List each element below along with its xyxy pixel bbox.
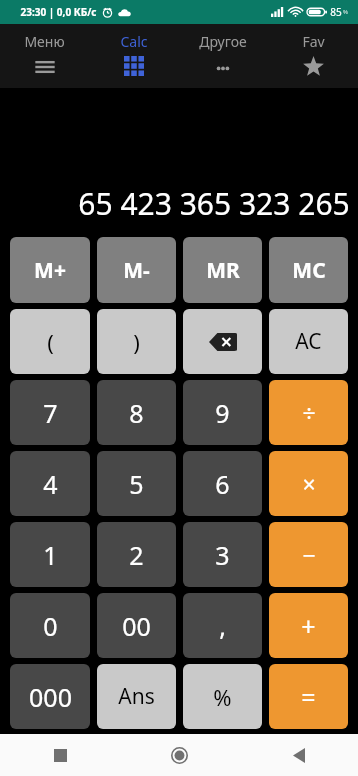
button[interactable]: Back xyxy=(239,734,358,776)
button[interactable]: Ans xyxy=(97,664,176,729)
button[interactable]: ÷ xyxy=(269,380,348,445)
button[interactable]: 9 xyxy=(183,380,262,445)
staticText: 00 xyxy=(122,609,151,643)
staticText: 23:30 | 0,0 КБ/с xyxy=(20,5,97,19)
staticText: , xyxy=(219,609,226,643)
staticText: ) xyxy=(133,327,140,357)
staticText: 1 xyxy=(43,538,58,572)
staticText: 9 xyxy=(215,396,230,430)
button[interactable]: Recents xyxy=(0,734,120,776)
button[interactable]: 8 xyxy=(97,380,176,445)
staticText: ÷ xyxy=(302,397,316,428)
staticText: Calc xyxy=(120,32,148,51)
staticText: Другое xyxy=(199,32,247,51)
button[interactable]: 4 xyxy=(10,451,90,516)
button[interactable]: MR xyxy=(183,237,262,303)
button[interactable]: MC xyxy=(269,237,348,303)
staticText: M- xyxy=(123,256,150,285)
button[interactable]: Меню xyxy=(0,24,89,88)
button[interactable]: % xyxy=(183,664,262,729)
staticText: = xyxy=(301,680,316,714)
button[interactable]: 5 xyxy=(97,451,176,516)
staticText: 6 xyxy=(215,467,230,501)
staticText: % xyxy=(213,682,232,712)
staticText: 65 423 365 323 265 xyxy=(78,183,350,224)
staticText: 0 xyxy=(43,609,58,643)
staticText: 000 xyxy=(29,680,72,714)
button[interactable]: M- xyxy=(97,237,176,303)
button[interactable]: Backspace xyxy=(183,309,262,374)
staticText: M+ xyxy=(34,256,66,285)
staticText: 2 xyxy=(129,538,144,572)
staticText: AC xyxy=(295,327,322,356)
button[interactable]: 6 xyxy=(183,451,262,516)
staticText: + xyxy=(301,609,316,643)
staticText: × xyxy=(302,468,316,499)
button[interactable]: ) xyxy=(97,309,176,374)
staticText: % xyxy=(343,8,348,16)
button[interactable]: + xyxy=(269,593,348,658)
staticText: ( xyxy=(47,327,54,357)
button[interactable]: M+ xyxy=(10,237,90,303)
button[interactable]: 2 xyxy=(97,522,176,587)
button[interactable]: ( xyxy=(10,309,90,374)
button[interactable]: 000 xyxy=(10,664,90,729)
staticText: − xyxy=(302,539,316,570)
staticText: Меню xyxy=(24,32,65,51)
staticText: MC xyxy=(292,256,326,285)
button[interactable]: × xyxy=(269,451,348,516)
button[interactable]: 0 xyxy=(10,593,90,658)
button[interactable]: Другое xyxy=(178,24,268,88)
staticText: Fav xyxy=(302,32,325,51)
button[interactable]: 3 xyxy=(183,522,262,587)
staticText: 85 xyxy=(330,5,342,19)
button[interactable]: 65 423 365 323 265 xyxy=(0,88,358,232)
button[interactable]: Calc xyxy=(89,24,178,88)
staticText: 3 xyxy=(215,538,230,572)
button[interactable]: = xyxy=(269,664,348,729)
button[interactable]: 00 xyxy=(97,593,176,658)
button[interactable]: AC xyxy=(269,309,348,374)
button[interactable]: 7 xyxy=(10,380,90,445)
button[interactable]: − xyxy=(269,522,348,587)
button[interactable]: 1 xyxy=(10,522,90,587)
staticText: 5 xyxy=(129,467,144,501)
staticText: Ans xyxy=(118,682,155,711)
button[interactable]: Fav xyxy=(268,24,358,88)
button[interactable]: Home xyxy=(120,734,239,776)
staticText: MR xyxy=(206,256,240,285)
button[interactable]: , xyxy=(183,593,262,658)
staticText: 8 xyxy=(129,396,144,430)
staticText: 7 xyxy=(43,396,58,430)
staticText: 4 xyxy=(43,467,58,501)
